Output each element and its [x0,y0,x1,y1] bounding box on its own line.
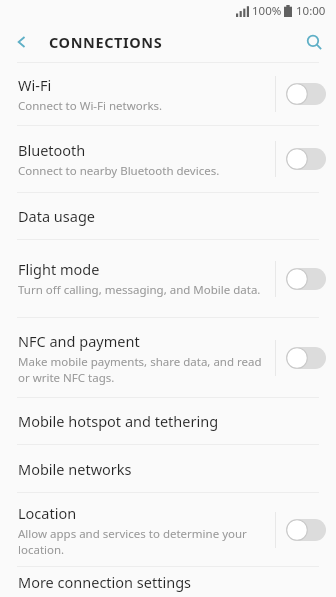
button[interactable]: Data usage [0,193,336,239]
staticText: NFC and payment [18,331,140,351]
staticText: Wi-Fi [18,75,52,95]
staticText: Connect to Wi-Fi networks. [18,98,163,114]
button[interactable]: More connection settings [0,567,336,597]
button[interactable]: Back [0,22,44,62]
button[interactable]: NFC and payment toggle [276,318,336,397]
button[interactable]: Location [0,493,336,566]
button[interactable]: Mobile networks [0,445,336,492]
button[interactable]: Wi-Fi toggle [276,63,336,125]
staticText: Bluetooth [18,140,86,160]
button[interactable]: NFC and payment [0,318,336,397]
button[interactable]: Flight mode toggle [276,240,336,317]
staticText: 100% [252,3,282,19]
button[interactable]: Flight mode [0,240,336,317]
staticText: Connect to nearby Bluetooth devices. [18,163,220,179]
staticText: Make mobile payments, share data, and re… [18,354,267,385]
staticText: Mobile hotspot and tethering [18,411,219,431]
button[interactable]: Wi-Fi [0,63,336,125]
staticText: Allow apps and services to determine you… [18,526,267,557]
button[interactable]: Search [292,22,336,62]
staticText: More connection settings [18,572,191,592]
staticText: Flight mode [18,259,100,279]
staticText: Turn off calling, messaging, and Mobile … [18,282,261,298]
staticText: 10:00 [296,3,326,19]
staticText: Data usage [18,206,95,226]
button[interactable]: Bluetooth [0,126,336,192]
staticText: Location [18,503,77,523]
button[interactable]: Bluetooth toggle [276,126,336,192]
button[interactable]: Location toggle [276,493,336,566]
button[interactable]: Mobile hotspot and tethering [0,398,336,444]
staticText: CONNECTIONS [49,32,163,52]
staticText: Mobile networks [18,459,132,479]
